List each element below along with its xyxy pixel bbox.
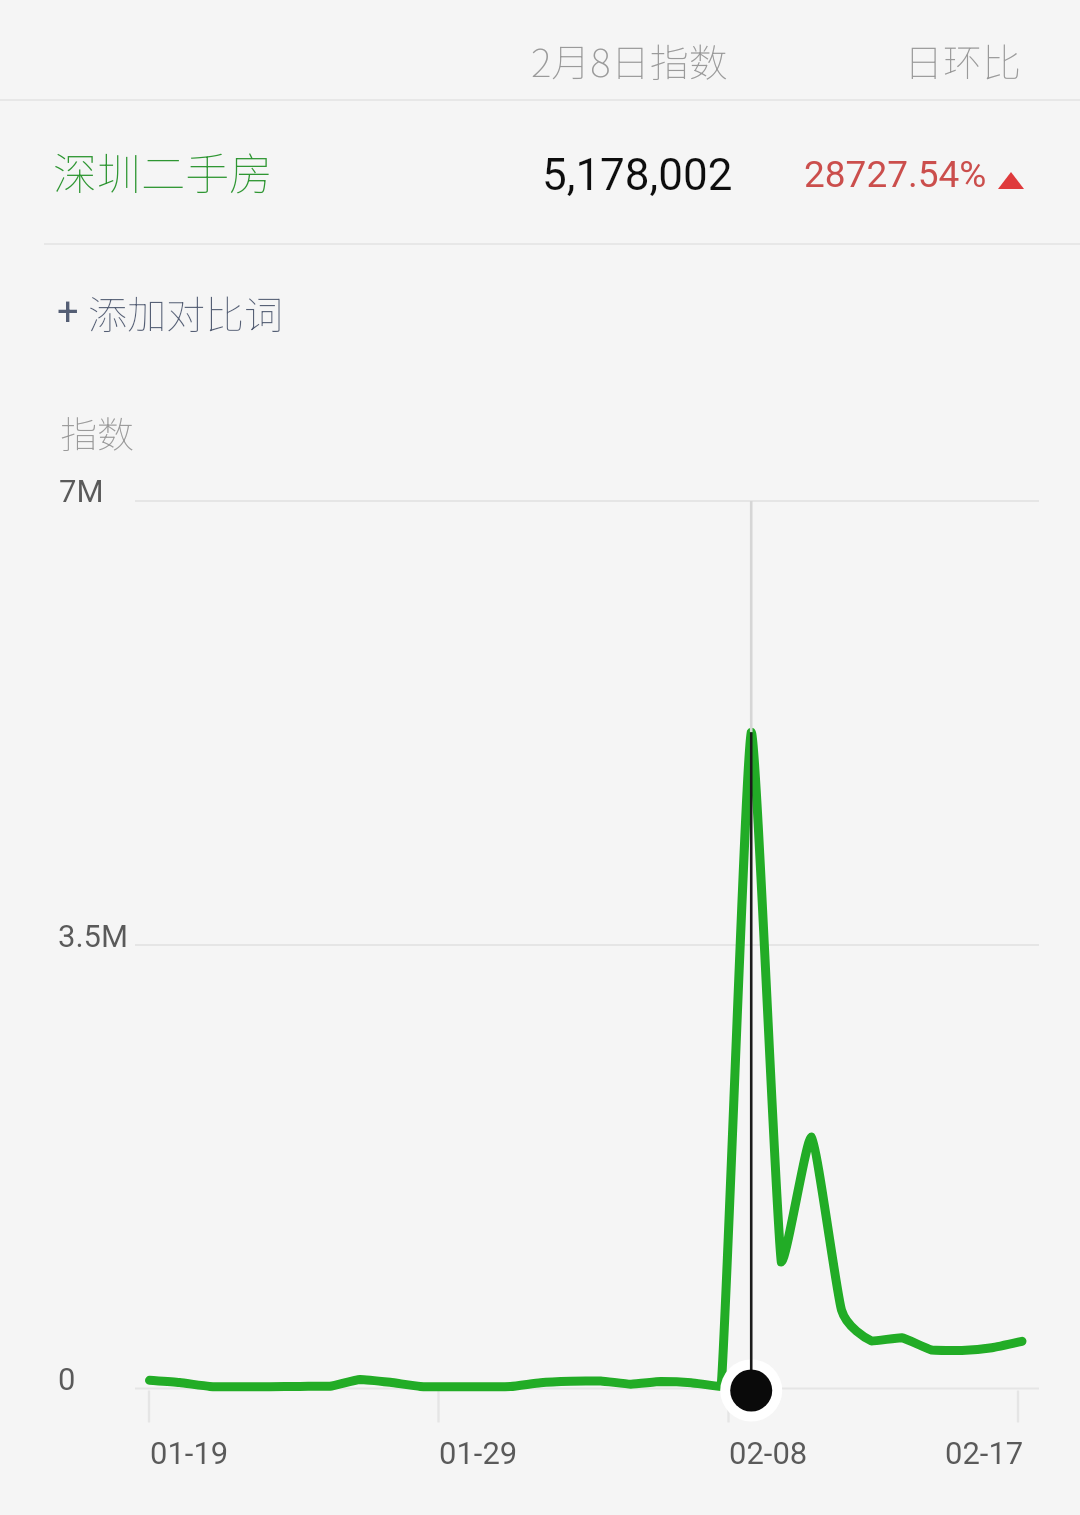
staticText: 01-19 [150, 1435, 229, 1471]
staticText: 02-17 [945, 1435, 1024, 1471]
staticText: 0 [58, 1361, 76, 1397]
button[interactable]: 深圳二手房 [0, 96, 1080, 242]
other: Search index trend chart [0, 0, 1080, 1515]
staticText: 01-29 [439, 1435, 518, 1471]
other: Rising [998, 172, 1024, 189]
staticText: 2月8日指数 [531, 32, 728, 88]
staticText: 深圳二手房 [53, 139, 273, 203]
staticText: 日环比 [904, 32, 1022, 88]
staticText: 添加对比词 [88, 284, 284, 340]
staticText: 指数 [60, 405, 134, 459]
staticText: 5,178,002 [542, 149, 733, 201]
staticText: 7M [59, 473, 104, 509]
staticText: 3.5M [58, 918, 129, 954]
staticText: 28727.54% [804, 153, 987, 196]
button[interactable]: + [40, 260, 320, 360]
staticText: + [57, 290, 88, 335]
staticText: 02-08 [729, 1435, 808, 1471]
